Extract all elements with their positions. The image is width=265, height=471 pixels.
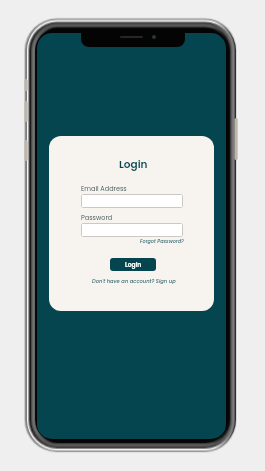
button[interactable]: Email Address field bbox=[81, 194, 183, 208]
button[interactable]: Password field bbox=[81, 223, 183, 237]
button[interactable]: Login bbox=[110, 258, 156, 271]
staticText: Email Address bbox=[81, 184, 127, 193]
staticText: Password bbox=[81, 213, 113, 222]
button[interactable]: Forgot Password? bbox=[82, 238, 184, 245]
staticText: Login bbox=[125, 261, 142, 269]
staticText: Login bbox=[119, 157, 148, 172]
staticText: Forgot Password? bbox=[140, 238, 184, 245]
button[interactable]: Don't have an account? Sign up bbox=[92, 278, 176, 285]
